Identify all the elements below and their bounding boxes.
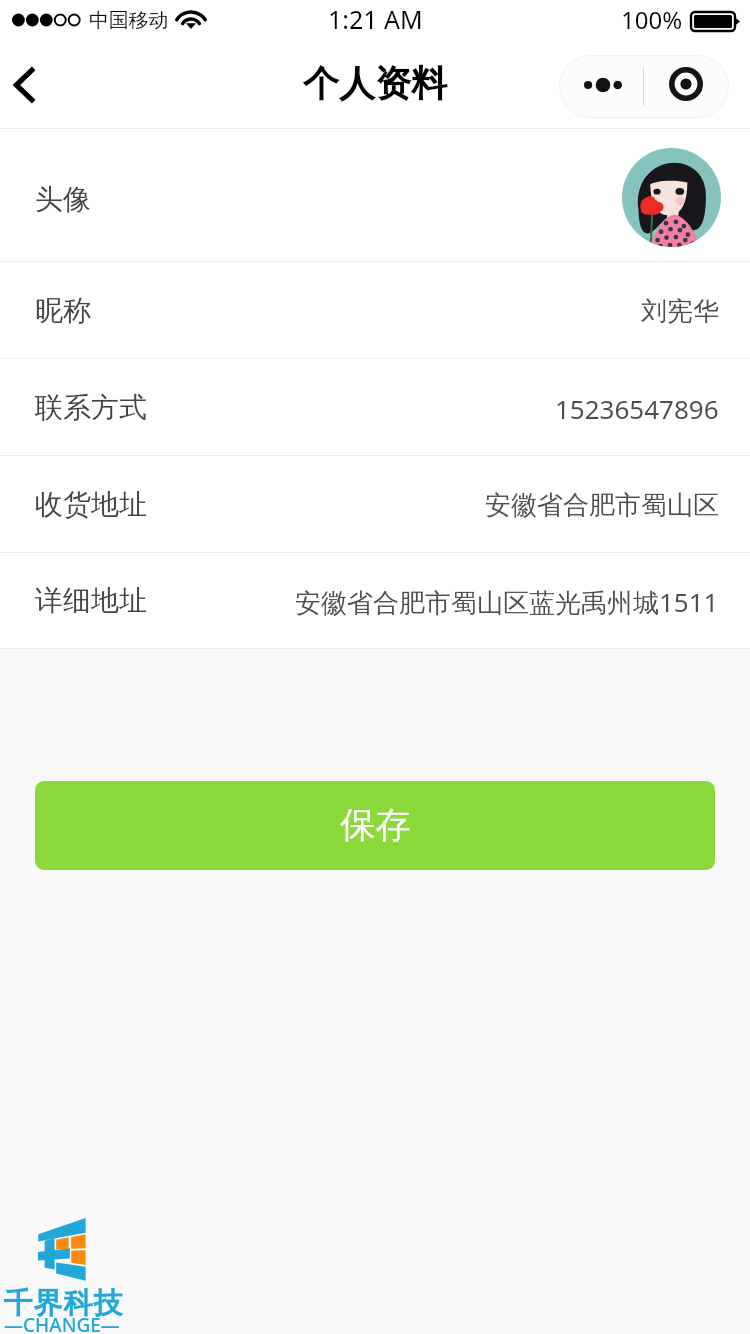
staticText: 15236547896 xyxy=(555,391,719,426)
staticText: 收货地址 xyxy=(35,487,147,522)
staticText: 头像 xyxy=(35,182,91,217)
staticText: 刘宪华 xyxy=(641,295,719,328)
button[interactable]: More options xyxy=(559,55,643,118)
button[interactable]: Back xyxy=(0,50,56,122)
staticText: 联系方式 xyxy=(35,390,147,425)
staticText: 中国移动 xyxy=(89,8,169,33)
staticText: 安徽省合肥市蜀山区蓝光禹州城1511 xyxy=(295,584,719,620)
staticText: 昵称 xyxy=(35,293,91,328)
staticText: 详细地址 xyxy=(35,583,147,618)
button[interactable]: 保存 xyxy=(35,781,715,870)
staticText: 保存 xyxy=(340,803,411,848)
button[interactable]: 详细地址 xyxy=(0,553,750,648)
staticText: 千界科技 xyxy=(3,1285,123,1322)
staticText: 个人资料 xyxy=(303,61,447,106)
button[interactable]: 昵称 xyxy=(0,262,750,358)
staticText: —CHANGE— xyxy=(4,1312,120,1334)
button[interactable]: 联系方式 xyxy=(0,359,750,455)
button[interactable]: 头像 xyxy=(0,129,750,261)
staticText: 安徽省合肥市蜀山区 xyxy=(485,489,719,522)
button[interactable]: Close xyxy=(644,55,729,118)
staticText: 100% xyxy=(621,3,683,36)
button[interactable]: 收货地址 xyxy=(0,456,750,552)
staticText: 1:21 AM xyxy=(328,2,423,36)
